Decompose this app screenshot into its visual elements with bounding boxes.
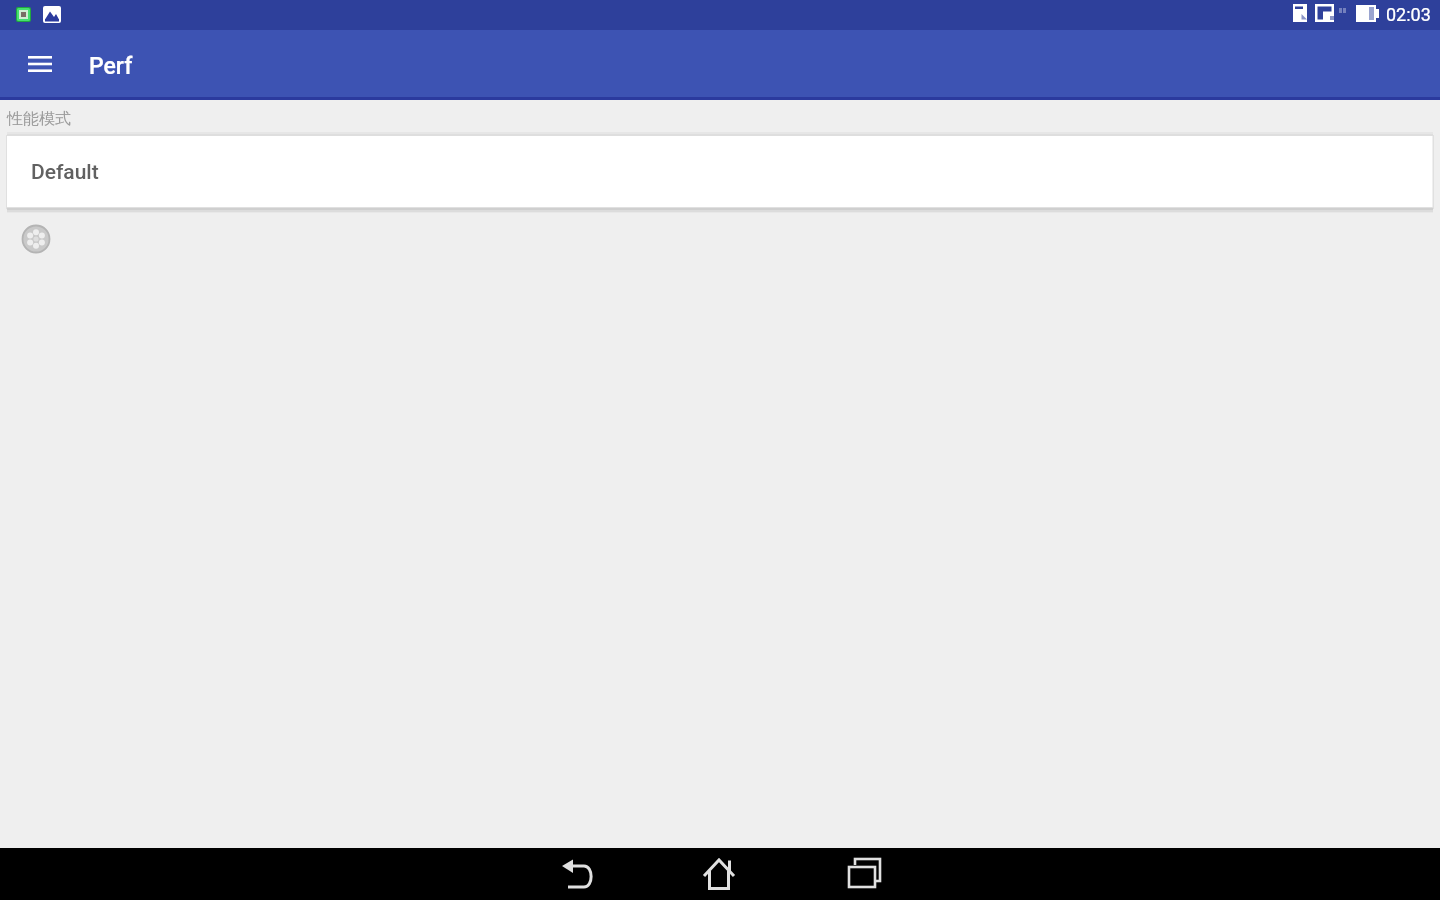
staticText: Perf	[89, 53, 133, 80]
button[interactable]: Loading	[21, 224, 51, 254]
button[interactable]: Home	[688, 848, 752, 900]
staticText: Default	[31, 160, 99, 185]
staticText: 性能模式	[7, 109, 71, 129]
staticText: 02:03	[1386, 4, 1431, 25]
button[interactable]: Default	[7, 136, 1432, 207]
button[interactable]: Recent apps	[832, 848, 896, 900]
button[interactable]: Open navigation menu	[16, 40, 64, 88]
button[interactable]: Back	[546, 848, 610, 900]
